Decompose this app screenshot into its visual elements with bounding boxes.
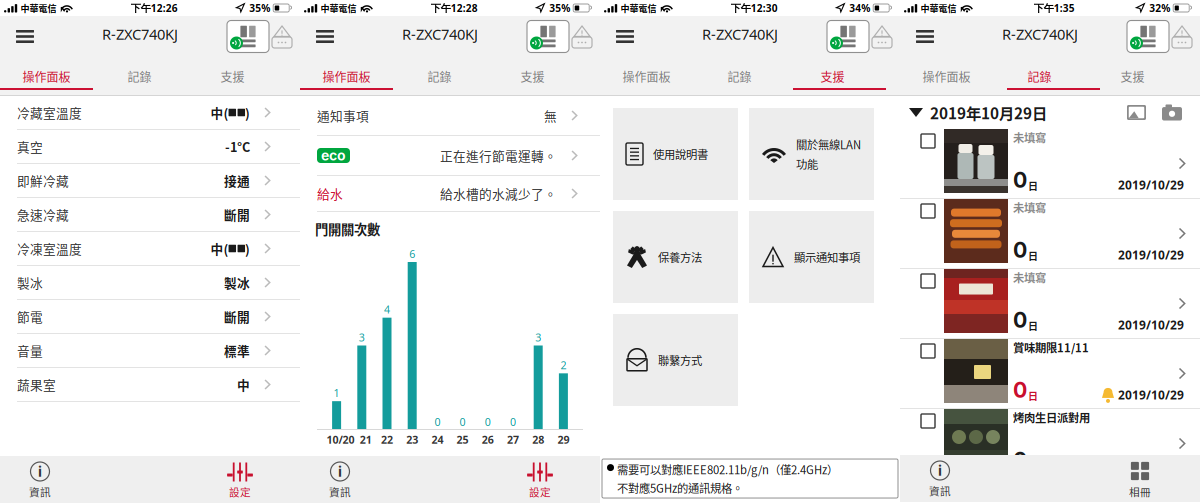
button[interactable]: 支援 <box>486 70 579 83</box>
button[interactable]: Alerts <box>271 24 293 48</box>
button[interactable]: 保養方法 <box>613 211 738 303</box>
button[interactable]: 未填寫 <box>900 129 1200 199</box>
button[interactable]: 急速冷藏 <box>0 198 300 232</box>
button[interactable]: 支援 <box>186 70 279 83</box>
button[interactable]: 操作面板 <box>0 70 93 83</box>
staticText: 21 <box>360 432 372 447</box>
button[interactable]: 蔬果室 <box>0 368 300 402</box>
button[interactable]: 冷凍室溫度 <box>0 232 300 266</box>
staticText: 支援 <box>820 68 844 85</box>
staticText: 急速冷藏 <box>17 205 69 224</box>
button[interactable]: 製冰 <box>0 266 300 300</box>
staticText: 正在進行節電運轉。 <box>440 146 557 165</box>
button[interactable]: Appliance status <box>227 20 269 52</box>
button[interactable]: 通知事項 <box>300 96 600 136</box>
staticText: 記錄 <box>1027 68 1051 85</box>
button[interactable]: 操作面板 <box>600 70 693 83</box>
staticText: 關於無線LAN <box>796 136 861 152</box>
button[interactable]: 使用說明書 <box>613 108 738 200</box>
button[interactable]: eco <box>300 136 600 176</box>
button[interactable]: i <box>10 456 70 503</box>
button[interactable]: 烤肉生日派對用 <box>900 409 1200 479</box>
button[interactable]: Photos <box>1127 105 1146 120</box>
button[interactable]: 記錄 <box>693 70 786 83</box>
button[interactable]: Alerts <box>871 24 893 48</box>
staticText: 使用說明書 <box>653 146 708 162</box>
button[interactable]: i <box>910 455 970 502</box>
staticText: R-ZXC740KJ <box>1002 24 1078 44</box>
staticText: 3 <box>535 330 541 344</box>
button[interactable]: i <box>310 456 370 503</box>
staticText: 2019/10/29 <box>1118 457 1184 473</box>
button[interactable]: Alerts <box>571 24 593 48</box>
staticText: 29 <box>557 432 569 447</box>
staticText: 操作面板 <box>22 68 70 85</box>
staticText: 蔬果室 <box>17 375 56 394</box>
staticText: 真空 <box>17 137 43 156</box>
staticText: 中華電信 <box>620 1 656 14</box>
staticText: 顯示通知事項 <box>794 249 860 265</box>
button[interactable]: 相冊 <box>1110 455 1170 502</box>
button[interactable]: 節電 <box>0 300 300 334</box>
staticText: 資訊 <box>29 484 51 499</box>
button[interactable]: Appliance status <box>527 20 569 52</box>
button[interactable]: Camera <box>1162 104 1182 120</box>
button[interactable]: Menu <box>904 16 946 56</box>
button[interactable]: Appliance status <box>827 20 869 52</box>
button[interactable]: 聯繫方式 <box>613 314 738 406</box>
button[interactable]: 關於無線LAN <box>749 108 874 200</box>
staticText: 給水 <box>317 184 343 203</box>
button[interactable]: 設定 <box>510 456 570 503</box>
staticText: 2019/10/29 <box>1118 247 1184 263</box>
button[interactable]: Alerts <box>1171 24 1193 48</box>
button[interactable]: 即鮮冷藏 <box>0 164 300 198</box>
staticText: 中華電信 <box>320 1 356 14</box>
button[interactable]: 設定 <box>210 456 270 503</box>
button[interactable]: 音量 <box>0 334 300 368</box>
staticText: 2019/10/29 <box>1118 317 1184 333</box>
button[interactable]: Appliance status <box>1127 20 1169 52</box>
staticText: 日 <box>1028 318 1038 333</box>
staticText: 中 <box>237 375 250 394</box>
staticText: 記錄 <box>727 68 751 85</box>
staticText: 音量 <box>17 341 43 360</box>
button[interactable]: 顯示通知事項 <box>749 211 874 303</box>
staticText: 3 <box>359 330 365 344</box>
staticText: 25 <box>457 432 469 447</box>
staticText: 2 <box>560 358 566 372</box>
button[interactable]: Menu <box>4 16 46 56</box>
staticText: 0 <box>1013 377 1027 403</box>
staticText: 斷開 <box>224 307 250 326</box>
staticText: 日 <box>1028 178 1038 193</box>
button[interactable]: 支援 <box>1086 70 1179 83</box>
button[interactable]: 支援 <box>786 70 879 83</box>
button[interactable]: 記錄 <box>993 70 1086 83</box>
staticText: 操作面板 <box>322 68 370 85</box>
button[interactable]: 真空 <box>0 130 300 164</box>
button[interactable]: Menu <box>304 16 346 56</box>
staticText: 未填寫 <box>1013 129 1046 145</box>
staticText: ) <box>245 103 250 122</box>
button[interactable]: Menu <box>604 16 646 56</box>
staticText: 下午12:26 <box>131 1 178 15</box>
staticText: 0 <box>1013 237 1027 263</box>
staticText: 34% <box>849 1 870 15</box>
staticText: 下午1:35 <box>1034 1 1075 15</box>
staticText: 0 <box>1013 307 1027 333</box>
button[interactable]: 未填寫 <box>900 269 1200 339</box>
button[interactable]: 操作面板 <box>300 70 393 83</box>
staticText: 0 <box>1013 167 1027 193</box>
staticText: 聯繫方式 <box>658 352 702 368</box>
button[interactable]: 賞味期限11/11 <box>900 339 1200 409</box>
staticText: i <box>38 463 42 480</box>
staticText: 冷凍室溫度 <box>17 239 82 258</box>
button[interactable]: 操作面板 <box>900 70 993 83</box>
button[interactable]: 未填寫 <box>900 199 1200 269</box>
button[interactable]: 冷藏室溫度 <box>0 96 300 130</box>
button[interactable]: 給水 <box>300 176 600 212</box>
staticText: 27 <box>507 432 519 447</box>
staticText: 0 <box>460 414 466 429</box>
button[interactable]: 記錄 <box>93 70 186 83</box>
button[interactable]: 記錄 <box>393 70 486 83</box>
